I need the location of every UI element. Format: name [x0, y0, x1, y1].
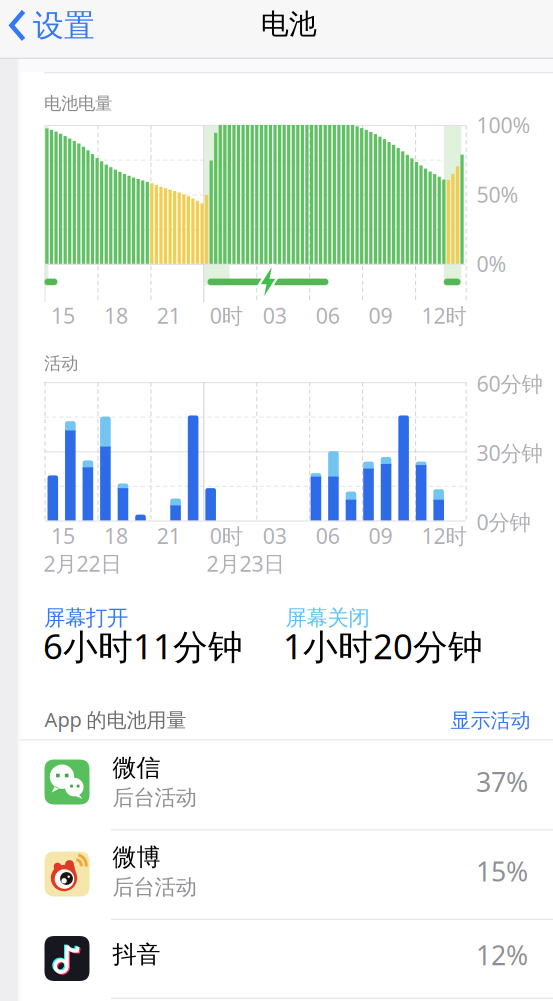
staticText: 0% [476, 250, 506, 278]
staticText: 屏幕打开 [44, 605, 128, 631]
staticText: 12时 [421, 521, 466, 550]
staticText: 抖音 [112, 940, 160, 969]
staticText: 12% [476, 937, 528, 973]
button[interactable]: 设置 [5, 4, 115, 50]
staticText: 0分钟 [476, 508, 530, 536]
staticText: 设置 [33, 7, 95, 45]
staticText: 6小时11分钟 [43, 623, 243, 669]
staticText: 电池电量 [44, 93, 112, 114]
staticText: 电池 [261, 7, 317, 41]
staticText: 屏幕关闭 [285, 605, 369, 631]
staticText: 2月23日 [206, 549, 284, 577]
staticText: 15 [51, 301, 75, 330]
staticText: 18 [104, 521, 128, 550]
staticText: 显示活动 [450, 708, 530, 733]
staticText: 03 [263, 301, 287, 330]
staticText: 09 [369, 521, 393, 550]
staticText: 06 [316, 301, 340, 330]
staticText: 21 [157, 521, 181, 550]
staticText: 15% [476, 853, 528, 889]
staticText: 活动 [44, 353, 78, 374]
staticText: 微信 [112, 753, 160, 782]
staticText: 30分钟 [476, 438, 542, 467]
staticText: 09 [369, 301, 393, 330]
button[interactable]: 微信 [0, 740, 553, 829]
staticText: 0时 [210, 301, 243, 330]
staticText: 37% [476, 764, 528, 799]
button[interactable]: 微博 [0, 829, 553, 919]
staticText: 后台活动 [112, 784, 196, 811]
staticText: 21 [157, 301, 181, 330]
staticText: App 的电池用量 [44, 706, 186, 733]
staticText: 03 [263, 521, 287, 550]
staticText: 2月22日 [43, 549, 121, 577]
staticText: 12时 [421, 301, 466, 330]
staticText: 100% [476, 111, 530, 139]
staticText: 60分钟 [476, 369, 542, 398]
staticText: 18 [104, 301, 128, 330]
button[interactable]: 抖音 [0, 919, 553, 998]
staticText: 15 [51, 521, 75, 550]
staticText: 50% [476, 180, 518, 208]
staticText: 微博 [112, 842, 160, 872]
staticText: 1小时20分钟 [283, 623, 483, 669]
staticText: 06 [316, 521, 340, 550]
staticText: 0时 [210, 521, 243, 550]
staticText: 后台活动 [112, 874, 196, 900]
button[interactable]: 显示活动 [230, 708, 530, 733]
